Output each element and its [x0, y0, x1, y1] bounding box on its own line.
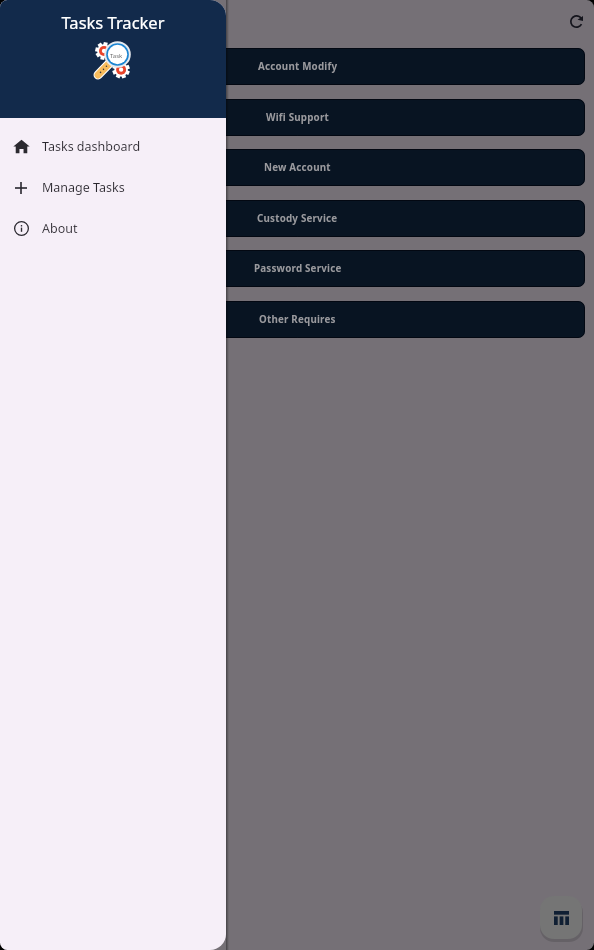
button[interactable]: Wifi Support — [10, 99, 585, 136]
staticText: Other Requires — [259, 313, 336, 326]
staticText: Task — [110, 52, 123, 60]
button[interactable]: Refresh — [562, 7, 590, 35]
staticText: Account Modify — [258, 60, 338, 73]
button[interactable]: Tasks dashboard — [0, 126, 226, 167]
staticText: Password Service — [254, 262, 342, 275]
button[interactable]: Custody Service — [10, 200, 585, 237]
staticText: Wifi Support — [266, 111, 329, 124]
button[interactable]: Manage Tasks — [0, 167, 226, 208]
staticText: Tasks dashboard — [42, 138, 141, 155]
staticText: Tasks Tracker — [0, 11, 226, 33]
staticText: About — [42, 220, 78, 237]
button[interactable]: About — [0, 208, 226, 249]
staticText: Manage Tasks — [42, 179, 125, 196]
button[interactable]: Password Service — [10, 250, 585, 287]
staticText: New Account — [264, 161, 331, 174]
staticText: Custody Service — [257, 212, 338, 225]
button[interactable]: New Account — [10, 149, 585, 186]
button[interactable]: Table view — [540, 896, 582, 939]
button[interactable]: Account Modify — [10, 48, 585, 85]
button[interactable]: Other Requires — [10, 301, 585, 338]
